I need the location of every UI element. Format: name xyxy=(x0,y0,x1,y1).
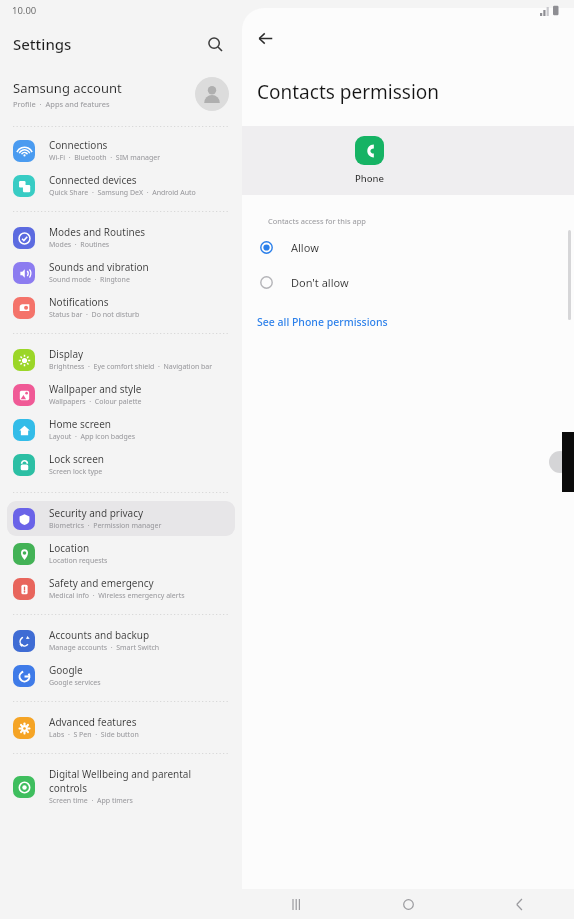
staticText: Lock screen xyxy=(49,452,105,466)
staticText: Wallpaper and style xyxy=(49,382,142,396)
button[interactable]: Back xyxy=(502,889,536,919)
button[interactable]: Security and privacy xyxy=(7,501,235,536)
button[interactable]: Back xyxy=(248,21,282,55)
button[interactable]: Home xyxy=(391,889,425,919)
button[interactable]: Connections xyxy=(7,133,235,168)
staticText: Security and privacy xyxy=(49,506,144,520)
staticText: Connections xyxy=(49,138,108,152)
staticText: Safety and emergency xyxy=(49,576,154,590)
button[interactable]: Digital Wellbeing and parental controls xyxy=(7,762,235,811)
button[interactable]: Lock screen xyxy=(7,447,235,482)
button[interactable]: Location xyxy=(7,536,235,571)
staticText: Don't allow xyxy=(291,275,349,290)
staticText: Sound mode · Ringtone xyxy=(49,275,130,285)
button[interactable]: Recents xyxy=(280,889,314,919)
button[interactable]: Samsung account xyxy=(0,72,242,116)
staticText: Google services xyxy=(49,678,101,688)
staticText: Accounts and backup xyxy=(49,628,150,642)
staticText: Display xyxy=(49,347,84,361)
staticText: Advanced features xyxy=(49,715,137,729)
button[interactable]: Allow xyxy=(242,236,574,259)
staticText: Screen time · App timers xyxy=(49,796,133,806)
staticText: Quick Share · Samsung DeX · Android Auto xyxy=(49,188,196,198)
staticText: Phone xyxy=(355,172,384,185)
staticText: Profile · Apps and features xyxy=(13,99,110,109)
staticText: Wi-Fi · Bluetooth · SIM manager xyxy=(49,153,161,163)
staticText: Home screen xyxy=(49,417,112,431)
staticText: Screen lock type xyxy=(49,467,103,477)
button[interactable]: Home screen xyxy=(7,412,235,447)
staticText: Modes · Routines xyxy=(49,240,110,250)
staticText: Connected devices xyxy=(49,173,137,187)
button[interactable]: Don't allow xyxy=(242,271,574,294)
staticText: Google xyxy=(49,663,83,677)
button[interactable]: Modes and Routines xyxy=(7,220,235,255)
staticText: Settings xyxy=(13,34,72,54)
staticText: Location xyxy=(49,541,90,555)
button[interactable]: Safety and emergency xyxy=(7,571,235,606)
staticText: See all Phone permissions xyxy=(257,315,388,329)
staticText: Allow xyxy=(291,240,319,255)
staticText: Contacts permission xyxy=(257,79,440,105)
staticText: Biometrics · Permission manager xyxy=(49,521,162,531)
staticText: Modes and Routines xyxy=(49,225,146,239)
button[interactable]: Accounts and backup xyxy=(7,623,235,658)
staticText: Layout · App icon badges xyxy=(49,432,136,442)
button[interactable]: Wallpaper and style xyxy=(7,377,235,412)
button[interactable]: Display xyxy=(7,342,235,377)
button[interactable]: See all Phone permissions xyxy=(242,312,398,332)
button[interactable]: Advanced features xyxy=(7,710,235,745)
staticText: Labs · S Pen · Side button xyxy=(49,730,139,740)
staticText: Sounds and vibration xyxy=(49,260,149,274)
button[interactable]: Connected devices xyxy=(7,168,235,203)
staticText: Medical info · Wireless emergency alerts xyxy=(49,591,185,601)
staticText: Notifications xyxy=(49,295,109,309)
button[interactable]: Notifications xyxy=(7,290,235,325)
button[interactable]: Search xyxy=(201,30,229,58)
staticText: Digital Wellbeing and parental controls xyxy=(49,767,229,795)
button[interactable]: Sounds and vibration xyxy=(7,255,235,290)
staticText: Manage accounts · Smart Switch xyxy=(49,643,160,653)
staticText: Status bar · Do not disturb xyxy=(49,310,140,320)
staticText: 10.00 xyxy=(12,4,37,17)
staticText: Contacts access for this app xyxy=(268,216,366,226)
staticText: Location requests xyxy=(49,556,108,566)
staticText: Wallpapers · Colour palette xyxy=(49,397,142,407)
staticText: Samsung account xyxy=(13,79,122,97)
staticText: Brightness · Eye comfort shield · Naviga… xyxy=(49,362,213,372)
button[interactable]: Google xyxy=(7,658,235,693)
